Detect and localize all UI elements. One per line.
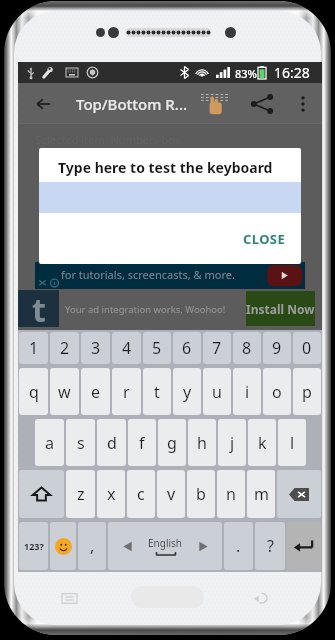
staticText: b [196, 483, 206, 505]
button[interactable]: g [158, 419, 186, 466]
button[interactable]: n [217, 470, 245, 518]
staticText: h [197, 432, 207, 454]
button[interactable]: 5 [143, 332, 171, 364]
button[interactable]: r [112, 368, 141, 415]
button[interactable]: 9 [263, 332, 291, 364]
staticText: m [254, 483, 269, 505]
staticText: 123? [24, 540, 44, 552]
button[interactable]: 2 [50, 332, 79, 364]
button[interactable]: t [143, 368, 171, 415]
button[interactable]: x [97, 470, 125, 518]
button[interactable]: 4 [112, 332, 141, 364]
staticText: 8 [242, 337, 252, 359]
button[interactable]: z [66, 470, 95, 518]
button[interactable]: 123? [19, 522, 48, 570]
staticText: 3 [91, 337, 101, 359]
button[interactable]: 6 [173, 332, 201, 364]
button[interactable]: 7 [203, 332, 231, 364]
button[interactable]: Space [108, 522, 222, 570]
button[interactable]: m [247, 470, 275, 518]
button[interactable]: Backspace [277, 470, 321, 518]
staticText: . [236, 535, 241, 557]
button[interactable]: b [187, 470, 215, 518]
button[interactable]: v [157, 470, 185, 518]
staticText: 2 [60, 337, 70, 359]
button[interactable]: Back [23, 83, 63, 124]
button[interactable]: ? [255, 522, 285, 570]
button[interactable]: p [293, 368, 321, 415]
staticText: t [32, 288, 46, 325]
staticText: n [226, 483, 236, 505]
button[interactable]: Video ad [35, 262, 305, 289]
button[interactable]: w [50, 368, 79, 415]
button[interactable]: Share [242, 83, 282, 124]
button[interactable]: o [263, 368, 291, 415]
button[interactable]: , [78, 522, 106, 570]
staticText: s [77, 432, 85, 454]
staticText: z [77, 483, 85, 505]
staticText: c [137, 483, 145, 505]
button[interactable]: 8 [233, 332, 261, 364]
staticText: 1 [29, 337, 39, 359]
staticText: , [90, 535, 95, 557]
button[interactable]: q [19, 368, 48, 415]
staticText: English [148, 536, 183, 550]
button[interactable]: y [173, 368, 201, 415]
staticText: Type here to test the keyboard [58, 158, 273, 177]
button[interactable]: a [35, 419, 64, 466]
staticText: 16:28 [274, 63, 310, 82]
button[interactable]: s [66, 419, 95, 466]
staticText: p [302, 381, 312, 403]
button[interactable]: CLOSE [238, 227, 291, 251]
staticText: y [183, 381, 192, 403]
button[interactable]: Shift [19, 470, 64, 518]
staticText: e [91, 381, 101, 403]
staticText: r [123, 381, 130, 403]
staticText: Your ad integration works. Woohoo! [65, 303, 226, 316]
button[interactable]: Menu [62, 591, 77, 606]
staticText: i [245, 381, 250, 403]
button[interactable]: Enter [287, 522, 321, 570]
button[interactable]: l [278, 419, 306, 466]
button[interactable]: Install Now [246, 291, 315, 326]
staticText: ? [267, 535, 274, 557]
staticText: for tutorials, screencasts, & more. [61, 267, 235, 282]
staticText: 9 [272, 337, 282, 359]
button[interactable]: Keyboard [193, 83, 235, 124]
button[interactable]: 1 [19, 332, 48, 364]
staticText: g [167, 432, 177, 454]
staticText: d [107, 432, 117, 454]
button[interactable]: i [233, 368, 261, 415]
staticText: w [58, 381, 71, 403]
staticText: 6 [182, 337, 192, 359]
button[interactable]: Back [253, 590, 269, 606]
staticText: 4 [122, 337, 132, 359]
button[interactable]: e [81, 368, 110, 415]
staticText: f [139, 432, 145, 454]
button[interactable]: f [128, 419, 156, 466]
staticText: u [212, 381, 222, 403]
button[interactable]: More options [286, 83, 319, 124]
staticText: Top/Bottom R... [76, 94, 188, 114]
button[interactable]: h [188, 419, 216, 466]
staticText: x [107, 483, 116, 505]
staticText: q [29, 381, 39, 403]
button[interactable]: 3 [81, 332, 110, 364]
button[interactable]: 0 [293, 332, 321, 364]
button[interactable]: c [127, 470, 155, 518]
button[interactable]: k [248, 419, 276, 466]
button[interactable]: u [203, 368, 231, 415]
staticText: Install Now [246, 301, 315, 317]
staticText: v [167, 483, 176, 505]
button[interactable]: j [218, 419, 246, 466]
button[interactable]: . [224, 522, 253, 570]
staticText: a [45, 432, 54, 454]
staticText: o [272, 381, 282, 403]
button[interactable]: d [97, 419, 126, 466]
button[interactable]: Emoji [50, 522, 76, 570]
staticText: 83% [235, 66, 257, 81]
staticText: l [290, 432, 295, 454]
